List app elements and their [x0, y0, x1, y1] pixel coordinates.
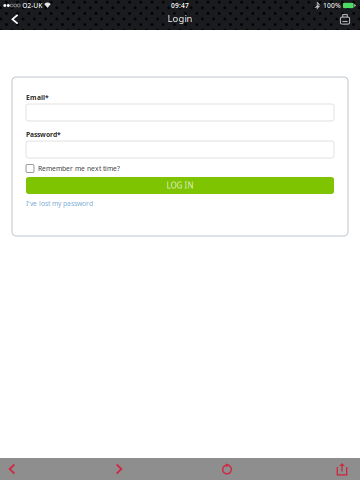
staticText: 09:47: [171, 1, 189, 10]
button[interactable]: I've lost my password: [26, 199, 93, 208]
staticText: I've lost my password: [26, 199, 93, 208]
staticText: 100%: [323, 1, 341, 10]
staticText: Email*: [26, 93, 49, 102]
button[interactable]: Share: [330, 458, 354, 480]
button[interactable]: Remember me next time?: [26, 164, 334, 173]
staticText: O2-UK: [22, 1, 42, 10]
staticText: Remember me next time?: [38, 164, 120, 173]
button[interactable]: Forward: [107, 458, 131, 480]
button[interactable]: Back: [0, 11, 30, 26]
button[interactable]: Print: [330, 11, 360, 26]
button[interactable]: Reload: [215, 458, 239, 480]
staticText: Password*: [26, 130, 61, 139]
button[interactable]: LOG IN: [26, 177, 334, 194]
button[interactable]: Back: [0, 458, 24, 480]
staticText: Login: [167, 12, 192, 25]
staticText: LOG IN: [166, 180, 193, 191]
